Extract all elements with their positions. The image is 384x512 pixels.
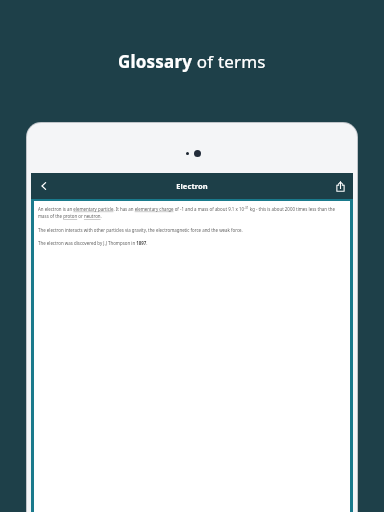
staticText: The electron was discovered by J.J Thomp… — [38, 240, 148, 246]
button[interactable]: Share — [327, 173, 353, 199]
staticText: Glossary of terms — [118, 50, 266, 73]
staticText: The electron interacts with other partic… — [38, 227, 243, 233]
button[interactable]: Back — [31, 173, 57, 199]
staticText: Electron — [176, 181, 208, 191]
staticText: An electron is an elementary particle. I… — [38, 206, 344, 220]
